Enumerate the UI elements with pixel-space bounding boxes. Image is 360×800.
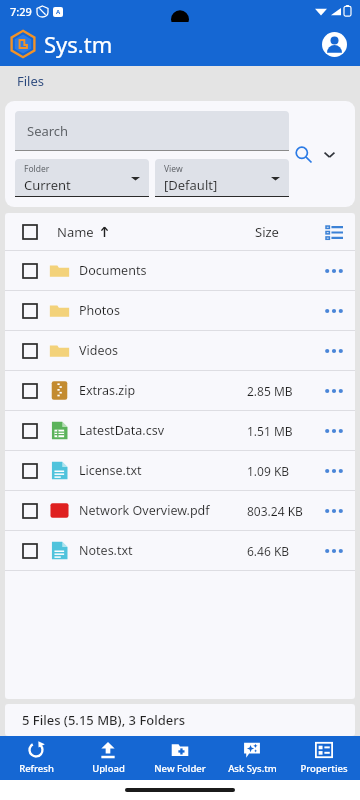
button[interactable]: More options [319,455,349,487]
staticText: [Default] [164,176,218,194]
button[interactable]: Account [318,28,350,60]
staticText: Folder [24,163,50,175]
staticText: A [56,8,61,16]
staticText: 1.51 MB [247,423,307,439]
staticText: 2.85 MB [247,383,307,399]
button[interactable]: Extras.zip [5,371,355,410]
staticText: License.txt [79,462,142,479]
staticText: Photos [79,302,120,319]
button[interactable]: License.txt [5,451,355,490]
staticText: Files [17,72,45,90]
staticText: New Folder [154,762,206,775]
staticText: Notes.txt [79,542,133,559]
staticText: Extras.zip [79,382,136,399]
staticText: 1.09 KB [247,463,307,479]
button[interactable]: Photos [5,291,355,330]
staticText: 6.46 KB [247,543,307,559]
button[interactable]: More options [319,375,349,407]
button[interactable]: More options [319,295,349,327]
staticText: Documents [79,262,147,279]
button[interactable]: View [155,159,289,197]
button[interactable]: Folder [15,159,149,197]
staticText: 5 Files (5.15 MB), 3 Folders [22,711,186,729]
staticText: Properties [300,762,348,775]
staticText: View [164,163,183,175]
staticText: Ask Sys.tm [228,762,277,775]
button[interactable]: Properties [288,736,360,780]
button[interactable]: Search [15,111,289,151]
button[interactable]: More options [319,535,349,567]
button[interactable]: Ask Sys.tm [216,736,288,780]
button[interactable]: View options [321,219,347,245]
staticText: Current [24,176,71,194]
button[interactable]: More options [319,495,349,527]
button[interactable]: More options [319,415,349,447]
staticText: Size [255,223,279,241]
button[interactable]: Expand [317,142,341,166]
staticText: Videos [79,342,119,359]
staticText: 803.24 KB [247,503,307,519]
button[interactable]: Files [17,72,45,90]
staticText: Search [27,122,69,140]
staticText: Sys.tm [44,29,113,59]
button[interactable]: More options [319,335,349,367]
button[interactable]: Search [289,140,317,168]
button[interactable]: New Folder [144,736,216,780]
staticText: Refresh [19,762,54,775]
staticText: Name [57,223,94,241]
button[interactable]: More options [319,255,349,287]
staticText: 7:29 [10,4,32,19]
button[interactable]: Notes.txt [5,531,355,570]
button[interactable]: Network Overview.pdf [5,491,355,530]
button[interactable]: Upload [72,736,144,780]
staticText: Network Overview.pdf [79,502,210,519]
button[interactable]: Name [5,213,355,250]
staticText: LatestData.csv [79,422,164,439]
button[interactable]: Documents [5,251,355,290]
button[interactable]: Refresh [0,736,72,780]
staticText: Upload [92,762,125,775]
button[interactable]: LatestData.csv [5,411,355,450]
button[interactable]: Videos [5,331,355,370]
